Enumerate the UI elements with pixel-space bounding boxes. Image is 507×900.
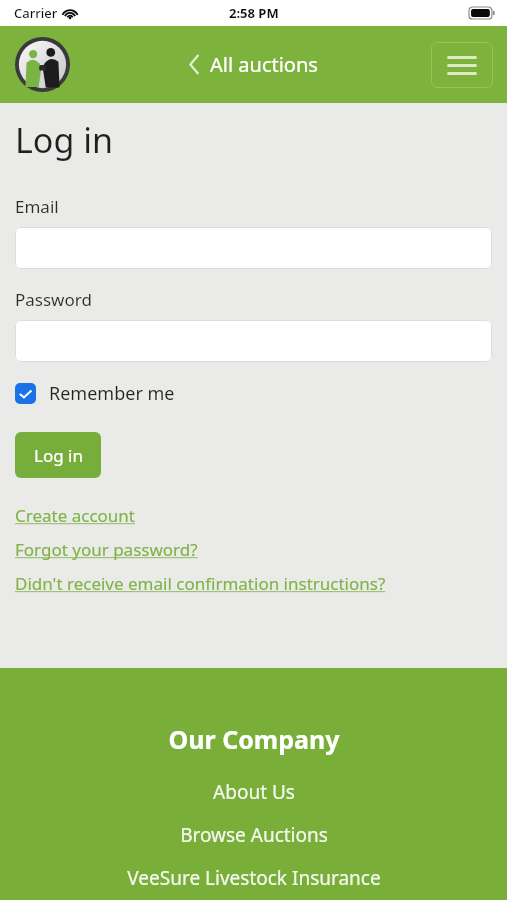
staticText: Forgot your password?	[15, 538, 198, 561]
button[interactable]: VeeSure Livestock Insurance	[127, 865, 381, 891]
staticText: Log in	[34, 444, 83, 467]
button[interactable]: All auctions	[189, 51, 318, 78]
staticText: All auctions	[210, 51, 318, 78]
button[interactable]: Home logo	[15, 37, 70, 92]
button[interactable]	[15, 320, 492, 362]
staticText: Remember me	[49, 381, 175, 406]
staticText: Log in	[15, 117, 113, 163]
staticText: 2:58 PM	[229, 4, 279, 22]
staticText: VeeSure Livestock Insurance	[127, 865, 381, 891]
button[interactable]: Didn't receive email confirmation instru…	[15, 572, 386, 595]
staticText: Email	[15, 195, 59, 218]
button[interactable]: Forgot your password?	[15, 538, 198, 561]
staticText: Didn't receive email confirmation instru…	[15, 572, 386, 595]
staticText: Browse Auctions	[180, 822, 328, 848]
staticText: Password	[15, 288, 92, 311]
staticText: About Us	[213, 779, 295, 805]
staticText: Create account	[15, 504, 135, 527]
button[interactable]: Menu	[431, 42, 493, 88]
staticText: Our Company	[168, 722, 340, 756]
button[interactable]: Create account	[15, 504, 135, 527]
button[interactable]: Log in	[15, 432, 101, 478]
button[interactable]: Remember me	[15, 381, 175, 406]
button[interactable]: Browse Auctions	[180, 822, 328, 848]
button[interactable]: About Us	[213, 779, 295, 805]
staticText: Carrier	[14, 4, 58, 22]
button[interactable]	[15, 227, 492, 269]
